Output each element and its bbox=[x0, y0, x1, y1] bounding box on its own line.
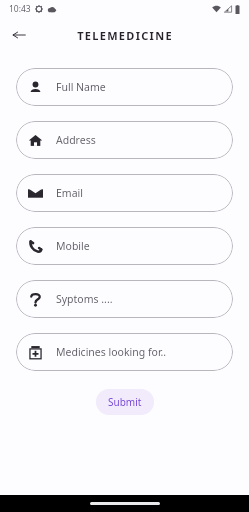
other: Mobile bbox=[28, 239, 43, 254]
staticText: Email bbox=[56, 186, 83, 200]
staticText: Full Name bbox=[56, 80, 106, 94]
staticText: Address bbox=[56, 133, 96, 147]
button[interactable]: Medicines bbox=[16, 333, 233, 371]
staticText: Medicines looking for.. bbox=[56, 345, 167, 359]
staticText: TELEMEDICINE bbox=[77, 28, 173, 43]
button[interactable]: Symptoms bbox=[16, 280, 233, 318]
other: Full name bbox=[28, 80, 43, 95]
staticText: Mobile bbox=[56, 239, 90, 253]
button[interactable]: Back bbox=[6, 22, 32, 48]
button[interactable]: Mobile bbox=[16, 227, 233, 265]
other: Medicines bbox=[28, 345, 43, 360]
staticText: 10:43 bbox=[9, 3, 31, 15]
other: Symptoms bbox=[28, 292, 43, 307]
staticText: Syptoms .... bbox=[56, 292, 113, 306]
other: Address bbox=[28, 133, 43, 148]
button[interactable]: Email bbox=[16, 174, 233, 212]
button[interactable]: Full name bbox=[16, 68, 233, 106]
button[interactable]: Address bbox=[16, 121, 233, 159]
staticText: Submit bbox=[108, 395, 142, 409]
other: Email bbox=[28, 186, 43, 201]
button[interactable]: Submit bbox=[96, 389, 154, 415]
